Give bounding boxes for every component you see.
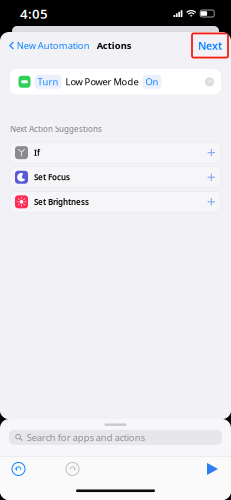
staticText: 4:05	[20, 5, 48, 22]
staticText: Search for apps and actions	[27, 431, 145, 444]
staticText: Turn	[37, 76, 58, 88]
button[interactable]: Actions	[90, 36, 132, 55]
button[interactable]: Undo	[12, 462, 25, 475]
staticText: Next Action Suggestions	[10, 123, 102, 134]
staticText: Set Brightness	[34, 196, 89, 207]
staticText: Set Focus	[34, 172, 70, 182]
button[interactable]: If	[10, 142, 221, 163]
button[interactable]: Run	[207, 463, 218, 475]
staticText: If	[34, 147, 40, 158]
staticText: Actions	[97, 39, 132, 52]
staticText: New Automation	[17, 39, 90, 52]
staticText: Next	[198, 38, 222, 53]
staticText: On	[145, 76, 158, 88]
button[interactable]: Set Focus	[10, 167, 221, 188]
button[interactable]: Redo	[66, 462, 79, 475]
button[interactable]: Turn	[10, 69, 221, 94]
button[interactable]: Set Brightness	[10, 191, 221, 212]
staticText: Low Power Mode	[65, 76, 138, 88]
button[interactable]: New Automation	[9, 36, 90, 55]
button[interactable]: Search for apps and actions	[9, 430, 222, 445]
button[interactable]: Next	[192, 33, 228, 58]
